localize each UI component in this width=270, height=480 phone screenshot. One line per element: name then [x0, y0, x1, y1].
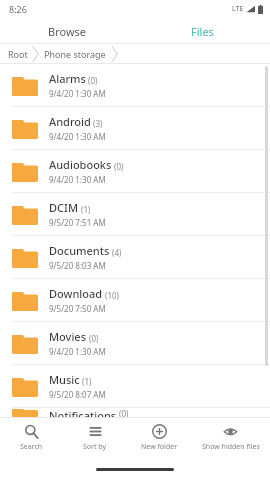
staticText: Show hidden files: [202, 442, 260, 452]
button[interactable]: Sort by: [63, 424, 127, 452]
staticText: 9/5/20 7:51 AM: [49, 217, 106, 228]
staticText: Download: [49, 286, 103, 301]
staticText: Movies: [49, 329, 87, 344]
staticText: Search: [20, 442, 43, 452]
staticText: 9/4/20 1:30 AM: [49, 131, 106, 142]
staticText: Root: [8, 48, 28, 60]
staticText: 8:26: [9, 3, 27, 15]
staticText: (4): [112, 247, 122, 258]
staticText: Notifications: [49, 408, 117, 417]
staticText: Audiobooks: [49, 157, 112, 172]
button[interactable]: Music: [0, 365, 270, 407]
staticText: 9/4/20 1:30 AM: [49, 174, 106, 185]
button[interactable]: Notifications: [0, 408, 270, 417]
staticText: LTE: [232, 4, 244, 14]
staticText: (0): [114, 161, 124, 172]
button[interactable]: Download: [0, 279, 270, 321]
staticText: 9/5/20 8:07 AM: [49, 389, 106, 400]
staticText: (0): [119, 408, 129, 417]
staticText: 9/4/20 1:30 AM: [49, 88, 106, 99]
staticText: Documents: [49, 243, 110, 258]
button[interactable]: Alarms: [0, 64, 270, 106]
button[interactable]: Files: [135, 18, 270, 44]
button[interactable]: Android: [0, 107, 270, 149]
button[interactable]: Audiobooks: [0, 150, 270, 192]
button[interactable]: Phone storage: [42, 48, 108, 60]
staticText: 9/4/20 1:30 AM: [49, 346, 106, 357]
staticText: Sort by: [83, 442, 107, 452]
staticText: 9/5/20 7:50 AM: [49, 303, 106, 314]
staticText: (1): [82, 376, 92, 387]
staticText: Alarms: [49, 71, 86, 86]
button[interactable]: Search: [0, 424, 63, 452]
staticText: Browse: [48, 24, 87, 39]
button[interactable]: Root: [6, 48, 30, 60]
staticText: (3): [93, 118, 103, 129]
staticText: DCIM: [49, 200, 79, 215]
staticText: (0): [89, 333, 99, 344]
staticText: Music: [49, 372, 80, 387]
button[interactable]: Show hidden files: [191, 424, 270, 452]
button[interactable]: DCIM: [0, 193, 270, 235]
staticText: (10): [105, 290, 119, 301]
button[interactable]: Documents: [0, 236, 270, 278]
staticText: New folder: [141, 442, 178, 452]
button[interactable]: New folder: [127, 424, 191, 452]
button[interactable]: Movies: [0, 322, 270, 364]
staticText: 9/5/20 8:03 AM: [49, 260, 106, 271]
staticText: (1): [81, 204, 91, 215]
staticText: (0): [88, 75, 98, 86]
staticText: Android: [49, 114, 91, 129]
button[interactable]: Browse: [0, 18, 135, 44]
staticText: Files: [191, 24, 214, 39]
staticText: Phone storage: [44, 48, 106, 60]
